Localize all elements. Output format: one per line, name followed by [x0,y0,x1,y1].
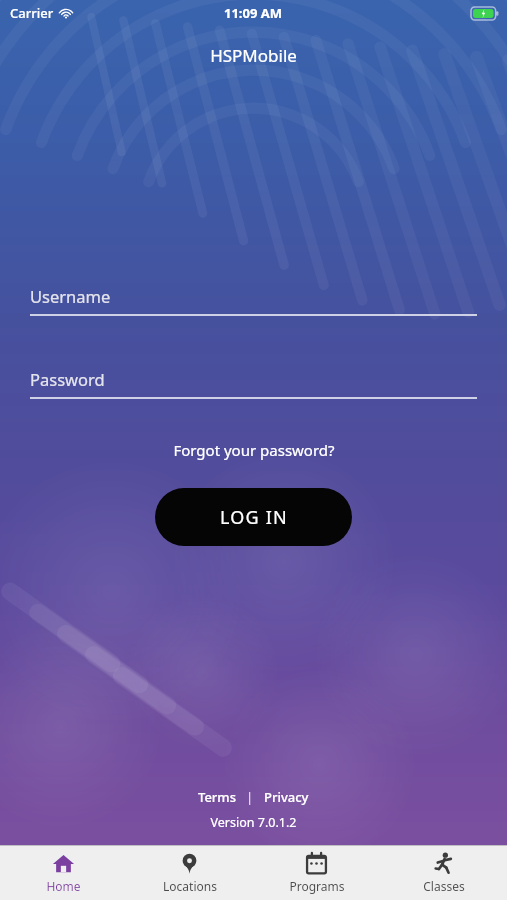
staticText: | [246,788,254,806]
button[interactable]: Terms [194,786,240,808]
staticText: Terms [198,788,236,806]
button[interactable]: Programs [253,846,380,900]
staticText: HSPMobile [0,44,507,67]
staticText: Privacy [264,788,309,806]
button[interactable]: Forgot your password? [0,436,507,464]
staticText: Home [46,878,81,894]
button[interactable]: Locations [126,846,253,900]
staticText: LOG IN [220,505,288,530]
staticText: Forgot your password? [173,440,335,460]
staticText: Password [30,368,105,390]
staticText: Version 7.0.1.2 [0,814,507,831]
other: Programs [305,852,328,875]
staticText: Username [30,285,111,307]
button[interactable]: Classes [380,846,507,900]
button[interactable]: Password [30,368,477,399]
other: Locations [178,852,201,875]
button[interactable]: LOG IN [155,488,352,546]
other: Classes [432,852,455,875]
button[interactable]: Username [30,285,477,316]
staticText: Locations [163,878,217,894]
button[interactable]: Privacy [260,786,313,808]
other: Home [52,852,75,875]
button[interactable]: Home [0,846,126,900]
staticText: 11:09 AM [224,4,283,22]
staticText: Carrier [10,4,54,22]
staticText: Programs [289,878,345,894]
staticText: Classes [423,878,465,894]
